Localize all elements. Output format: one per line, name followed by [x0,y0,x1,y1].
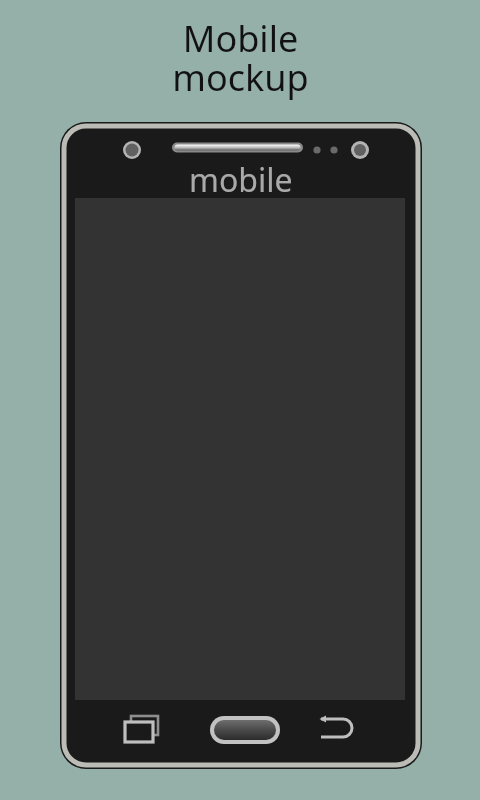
button[interactable]: Recent apps [110,706,166,756]
button[interactable]: Home [205,708,285,752]
button[interactable]: Back [312,706,368,756]
staticText: Mobile mockup [172,14,309,101]
staticText: mobile [189,158,293,202]
